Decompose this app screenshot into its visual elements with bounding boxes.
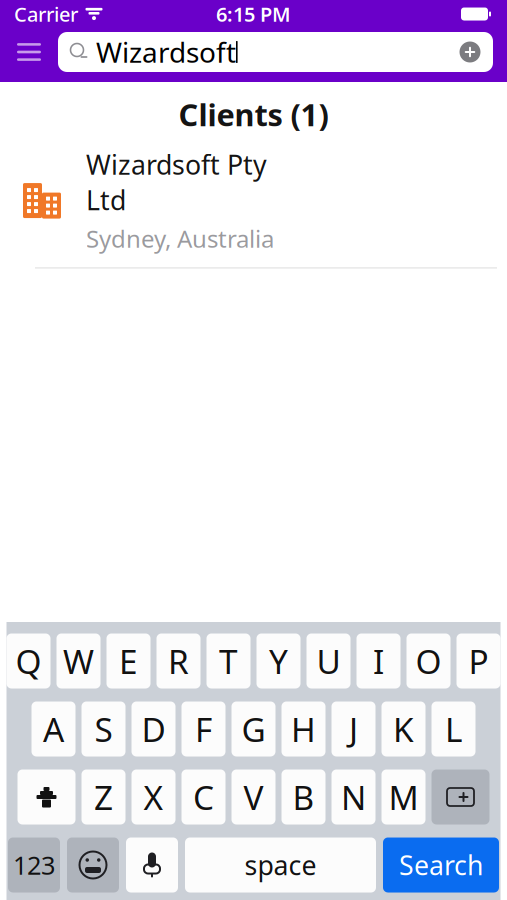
button[interactable]: P [456, 633, 500, 688]
button[interactable]: Search [383, 837, 499, 892]
staticText: Sydney, Australia [86, 223, 274, 254]
button[interactable]: L [431, 701, 475, 756]
staticText: H [291, 707, 316, 751]
staticText: X [143, 775, 163, 819]
staticText: 123 [13, 848, 55, 882]
button[interactable]: Shift [17, 769, 75, 824]
staticText: J [349, 707, 358, 751]
staticText: A [43, 707, 64, 751]
staticText: space [244, 847, 316, 883]
button[interactable]: Wizardsoft [58, 32, 493, 72]
button[interactable]: J [331, 701, 375, 756]
button[interactable]: W [56, 633, 100, 688]
button[interactable]: Y [256, 633, 300, 688]
staticText: B [292, 775, 314, 819]
button[interactable]: Menu [0, 27, 58, 77]
staticText: Wizardsoft Pty Ltd [86, 147, 267, 217]
button[interactable]: Z [81, 769, 125, 824]
staticText: U [316, 639, 340, 683]
button[interactable]: F [181, 701, 225, 756]
staticText: Search [399, 847, 483, 883]
button[interactable]: B [281, 769, 325, 824]
button[interactable]: R [156, 633, 200, 688]
staticText: Z [94, 775, 113, 819]
button[interactable]: K [381, 701, 425, 756]
staticText: R [168, 639, 189, 683]
staticText: S [94, 707, 112, 751]
staticText: Q [15, 639, 41, 683]
staticText: Carrier [14, 1, 78, 27]
staticText: N [341, 775, 366, 819]
button[interactable]: Dictation [126, 837, 178, 892]
button[interactable]: N [331, 769, 375, 824]
button[interactable]: C [181, 769, 225, 824]
button[interactable]: G [231, 701, 275, 756]
staticText: G [241, 707, 265, 751]
staticText: Y [269, 639, 288, 683]
staticText: 6:15 PM [216, 1, 291, 27]
staticText: O [415, 639, 441, 683]
button[interactable]: O [406, 633, 450, 688]
staticText: E [119, 639, 138, 683]
staticText: F [195, 707, 212, 751]
staticText: Clients (1) [178, 94, 328, 135]
button[interactable]: V [231, 769, 275, 824]
staticText: D [141, 707, 165, 751]
button[interactable]: T [206, 633, 250, 688]
button[interactable]: S [81, 701, 125, 756]
button[interactable]: H [281, 701, 325, 756]
staticText: M [388, 775, 418, 819]
button[interactable]: Q [6, 633, 50, 688]
staticText: W [63, 639, 94, 683]
staticText: C [193, 775, 214, 819]
staticText: L [445, 707, 462, 751]
staticText: V [243, 775, 263, 819]
staticText: K [393, 707, 414, 751]
button[interactable]: Delete [431, 769, 489, 824]
button[interactable]: 123 [8, 837, 60, 892]
button[interactable]: I [356, 633, 400, 688]
button[interactable]: E [106, 633, 150, 688]
button[interactable]: space [185, 837, 376, 892]
staticText: I [373, 639, 384, 683]
button[interactable]: X [131, 769, 175, 824]
button[interactable]: Wizardsoft Pty Ltd [0, 135, 507, 268]
button[interactable]: M [381, 769, 425, 824]
button[interactable]: Emoji [67, 837, 119, 892]
staticText: P [468, 639, 488, 683]
staticText: T [219, 639, 238, 683]
button[interactable]: A [31, 701, 75, 756]
button[interactable]: U [306, 633, 350, 688]
staticText: Wizardsoft [96, 33, 236, 71]
button[interactable]: D [131, 701, 175, 756]
